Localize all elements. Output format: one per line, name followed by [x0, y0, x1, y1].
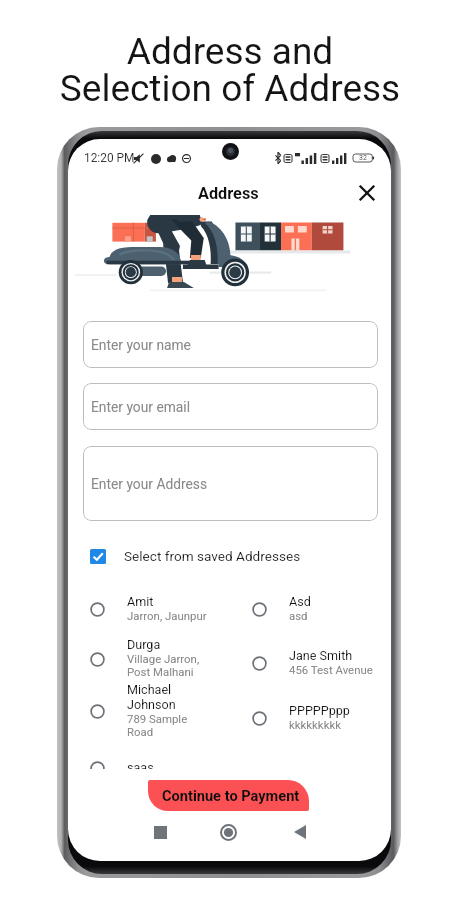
button[interactable]: Recents — [143, 815, 177, 849]
staticText: Jane Smith — [289, 648, 353, 663]
button[interactable]: Amit — [90, 579, 230, 639]
staticText: Amit — [127, 594, 154, 609]
staticText: saas — [127, 760, 154, 769]
staticText: 12:20 PM — [84, 151, 135, 165]
button[interactable]: Asd — [252, 579, 390, 639]
staticText: Michael Johnson — [127, 682, 176, 712]
staticText: Durga — [127, 637, 161, 652]
staticText: Jarron, Jaunpur — [127, 609, 207, 622]
button[interactable]: Jane Smith — [252, 633, 390, 693]
staticText: asd — [289, 609, 308, 622]
button[interactable]: Select from saved Addresses — [90, 548, 301, 564]
staticText: Village Jarron, Post Malhani — [127, 652, 200, 679]
button[interactable]: Back — [283, 815, 317, 849]
staticText: Address and Selection of Address — [0, 30, 460, 110]
staticText: Continue to Payment — [162, 787, 300, 804]
button[interactable]: Enter your email — [83, 383, 378, 430]
button[interactable]: PPPPPppp — [252, 688, 390, 748]
staticText: Asd — [289, 594, 311, 609]
staticText: Enter your name — [91, 337, 191, 353]
staticText: Enter your email — [91, 399, 191, 415]
button[interactable]: Home — [211, 815, 245, 849]
button[interactable]: saas — [90, 738, 230, 769]
staticText: Enter your Address — [91, 476, 208, 492]
button[interactable]: Michael Johnson — [90, 681, 230, 741]
button[interactable]: Durga — [90, 629, 230, 689]
staticText: Select from saved Addresses — [124, 548, 301, 564]
staticText: PPPPPppp — [289, 703, 350, 718]
button[interactable]: Continue to Payment — [148, 780, 309, 811]
button[interactable]: Enter your Address — [83, 446, 378, 521]
staticText: 32 — [359, 154, 367, 162]
staticText: 789 Sample Road — [127, 712, 188, 739]
staticText: 456 Test Avenue — [289, 663, 373, 676]
button[interactable]: Enter your name — [83, 321, 378, 368]
button[interactable]: Close — [356, 182, 378, 204]
staticText: kkkkkkkkk — [289, 718, 341, 731]
staticText: Address — [198, 184, 259, 203]
